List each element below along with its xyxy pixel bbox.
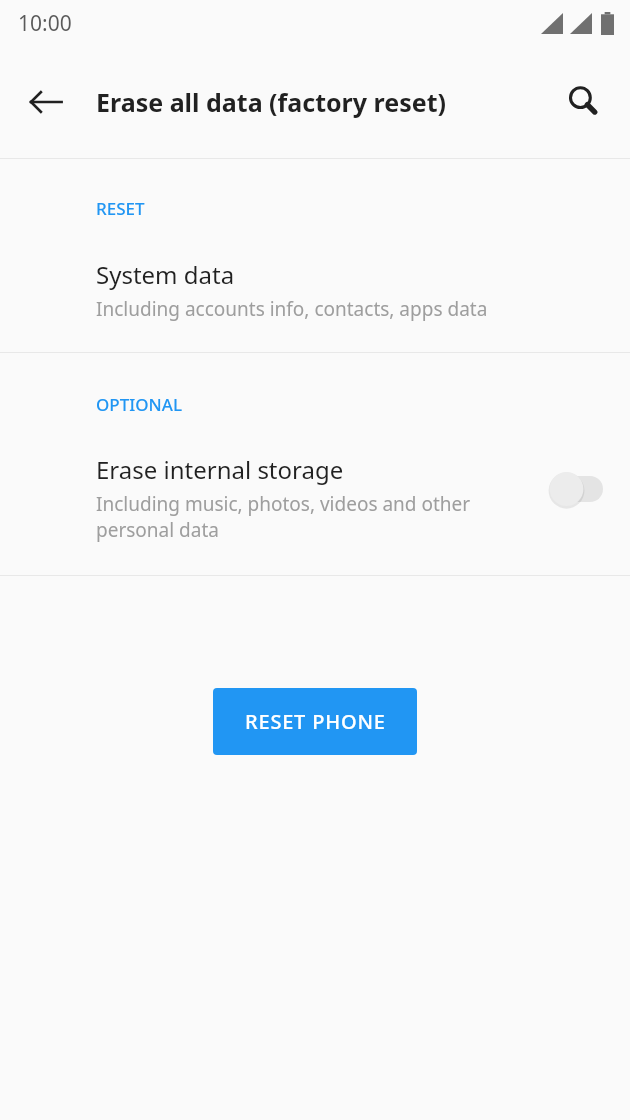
button[interactable]: Search (552, 70, 616, 134)
staticText: RESET PHONE (245, 708, 386, 735)
staticText: OPTIONAL (96, 393, 183, 416)
staticText: Erase all data (factory reset) (96, 85, 446, 119)
staticText: System data (96, 258, 235, 291)
button[interactable]: Erase internal storage (0, 453, 630, 575)
staticText: Erase internal storage (96, 453, 344, 486)
button[interactable]: System data (0, 258, 630, 352)
staticText: Including accounts info, contacts, apps … (96, 296, 488, 322)
staticText: Including music, photos, videos and othe… (96, 491, 471, 517)
button[interactable]: RESET PHONE (213, 688, 417, 755)
button[interactable]: Back (14, 70, 78, 134)
button[interactable]: Erase internal storage toggle (544, 467, 608, 511)
staticText: 10:00 (18, 9, 72, 38)
staticText: RESET (96, 197, 145, 220)
staticText: personal data (96, 517, 219, 543)
